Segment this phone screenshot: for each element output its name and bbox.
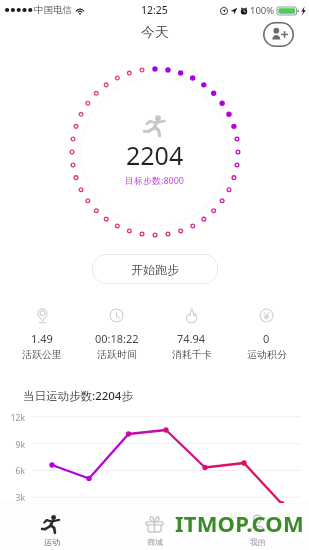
staticText: 当日运动步数:2204步 — [23, 388, 133, 404]
button[interactable]: Add friend — [263, 22, 294, 47]
staticText: 消耗千卡 — [172, 348, 212, 361]
staticText: 0 — [263, 331, 270, 346]
button[interactable]: 开始跑步 — [92, 254, 218, 284]
button[interactable]: 运动 — [0, 504, 103, 550]
button[interactable]: 1.49 — [5, 308, 79, 361]
staticText: 我的 — [250, 537, 266, 547]
staticText: ITMOP.COM — [175, 508, 304, 538]
button[interactable]: 我的 — [206, 504, 309, 550]
button[interactable]: 商城 — [103, 504, 206, 550]
staticText: 00:18:22 — [95, 331, 139, 346]
staticText: 3k — [0, 492, 25, 504]
staticText: 12k — [0, 412, 25, 424]
staticText: 74.94 — [177, 331, 206, 346]
button[interactable]: 0 — [229, 308, 304, 361]
staticText: 今天 — [141, 24, 169, 42]
staticText: 活跃时间 — [97, 348, 137, 361]
staticText: 9k — [0, 439, 25, 451]
button[interactable]: 74.94 — [154, 308, 229, 361]
staticText: 12:25 — [141, 3, 168, 17]
button[interactable]: 00:18:22 — [79, 308, 154, 361]
staticText: 6k — [0, 465, 25, 477]
staticText: 活跃公里 — [22, 348, 62, 361]
staticText: 商城 — [147, 537, 163, 547]
staticText: 2204 — [126, 138, 184, 172]
staticText: 运动积分 — [247, 348, 287, 361]
staticText: 目标步数:8000 — [125, 174, 185, 186]
staticText: 运动 — [44, 537, 60, 547]
staticText: 100% — [250, 4, 275, 17]
staticText: 开始跑步 — [131, 262, 179, 277]
staticText: 中国电信 — [34, 4, 72, 16]
staticText: 1.49 — [31, 331, 53, 346]
